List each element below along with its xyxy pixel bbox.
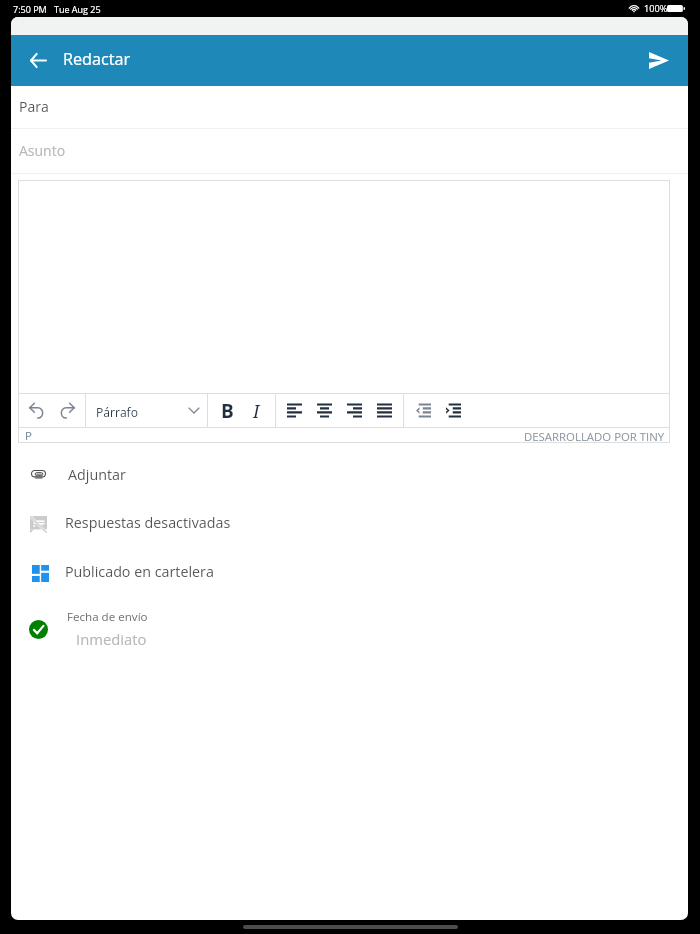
button[interactable]: Adjuntar xyxy=(11,451,688,498)
staticText: Tue Aug 25 xyxy=(54,3,101,15)
staticText: P xyxy=(25,428,32,442)
button[interactable]: Undo xyxy=(20,394,52,427)
staticText: Redactar xyxy=(63,48,131,70)
staticText: DESARROLLADO POR TINY xyxy=(524,429,665,443)
button[interactable]: Fecha de envío xyxy=(11,602,688,658)
staticText: 7:50 PM xyxy=(13,3,47,15)
staticText: Párrafo xyxy=(96,404,138,420)
staticText: Fecha de envío xyxy=(67,609,148,625)
button[interactable]: Italic xyxy=(240,394,272,427)
button[interactable]: Para xyxy=(11,85,688,128)
staticText: B xyxy=(221,398,234,424)
button[interactable]: Párrafo xyxy=(86,394,208,427)
button[interactable]: Justify xyxy=(368,394,400,427)
button[interactable]: Indent xyxy=(437,394,469,427)
button[interactable]: Publicado en cartelera xyxy=(11,546,688,593)
button[interactable]: Outdent xyxy=(407,394,439,427)
button[interactable]: Bold xyxy=(211,394,243,427)
button[interactable]: Asunto xyxy=(11,129,688,172)
button[interactable]: Align left xyxy=(278,394,310,427)
staticText: I xyxy=(253,399,260,423)
staticText: Respuestas desactivadas xyxy=(65,513,231,532)
staticText: Para xyxy=(19,97,49,116)
staticText: 100% xyxy=(644,2,668,15)
staticText: Publicado en cartelera xyxy=(65,562,214,581)
button[interactable]: Align center xyxy=(308,394,340,427)
staticText: Asunto xyxy=(19,141,66,160)
button[interactable]: Send xyxy=(635,36,683,84)
staticText: Adjuntar xyxy=(68,465,126,484)
button[interactable]: Respuestas desactivadas xyxy=(11,498,688,545)
button[interactable]: Back xyxy=(14,36,62,84)
button[interactable]: Align right xyxy=(338,394,370,427)
button[interactable]: Redo xyxy=(51,394,83,427)
staticText: Inmediato xyxy=(76,629,147,649)
